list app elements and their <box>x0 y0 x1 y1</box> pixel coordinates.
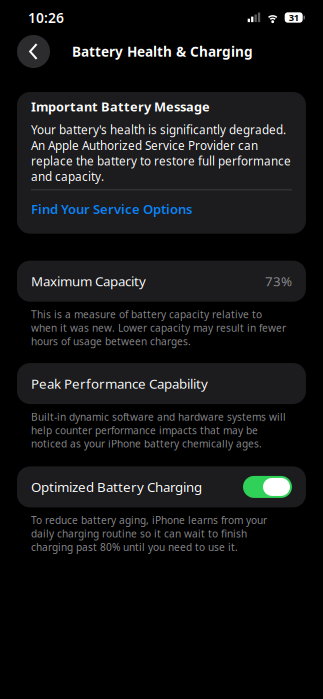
staticText: Optimized Battery Charging <box>31 478 202 496</box>
staticText: 10:26 <box>28 8 64 27</box>
button[interactable]: Peak Performance Capability <box>17 363 306 404</box>
staticText: Battery Health & Charging <box>72 42 253 61</box>
staticText: Built-in dynamic software and hardware s… <box>31 410 286 450</box>
staticText: This is a measure of battery capacity re… <box>31 308 286 348</box>
staticText: Maximum Capacity <box>31 272 146 290</box>
button[interactable]: Optimized Battery Charging <box>17 466 306 507</box>
button[interactable]: Maximum Capacity <box>17 261 306 302</box>
staticText: Your battery's health is significantly d… <box>31 122 291 184</box>
staticText: Important Battery Message <box>31 98 210 115</box>
button[interactable]: Back <box>17 35 50 68</box>
staticText: 31 <box>289 11 299 24</box>
staticText: 73% <box>265 272 292 290</box>
button[interactable]: Find Your Service Options <box>31 200 292 218</box>
staticText: Find Your Service Options <box>31 200 192 218</box>
staticText: Peak Performance Capability <box>31 375 208 392</box>
staticText: To reduce battery aging, iPhone learns f… <box>31 513 267 554</box>
